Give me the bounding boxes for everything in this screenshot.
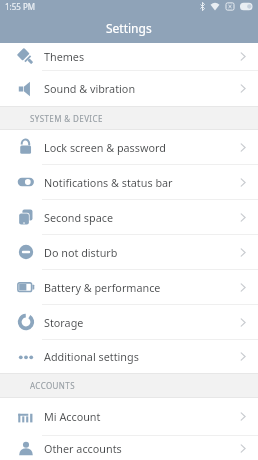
staticText: Storage: [44, 315, 84, 330]
staticText: Settings: [106, 20, 152, 36]
staticText: Notifications & status bar: [44, 175, 173, 190]
staticText: Themes: [44, 49, 85, 64]
staticText: Second space: [44, 210, 113, 225]
button[interactable]: Sound & vibration: [0, 71, 258, 106]
button[interactable]: Mi Account: [0, 398, 258, 435]
staticText: SYSTEM & DEVICE: [30, 113, 103, 124]
button[interactable]: Themes: [0, 43, 258, 70]
staticText: Additional settings: [44, 349, 139, 364]
button[interactable]: Other accounts: [0, 436, 258, 460]
button[interactable]: Second space: [0, 200, 258, 234]
staticText: Battery & performance: [44, 280, 161, 295]
staticText: Lock screen & password: [44, 140, 166, 155]
button[interactable]: Notifications & status bar: [0, 165, 258, 199]
button[interactable]: Do not disturb: [0, 235, 258, 269]
button[interactable]: Storage: [0, 305, 258, 339]
staticText: ACCOUNTS: [30, 380, 75, 391]
staticText: Do not disturb: [44, 245, 118, 260]
button[interactable]: Additional settings: [0, 340, 258, 373]
button[interactable]: Lock screen & password: [0, 130, 258, 164]
staticText: Sound & vibration: [44, 81, 136, 96]
staticText: 1:55 PM: [5, 1, 36, 12]
button[interactable]: Battery & performance: [0, 270, 258, 304]
staticText: Mi Account: [44, 409, 101, 424]
staticText: Other accounts: [44, 441, 122, 456]
